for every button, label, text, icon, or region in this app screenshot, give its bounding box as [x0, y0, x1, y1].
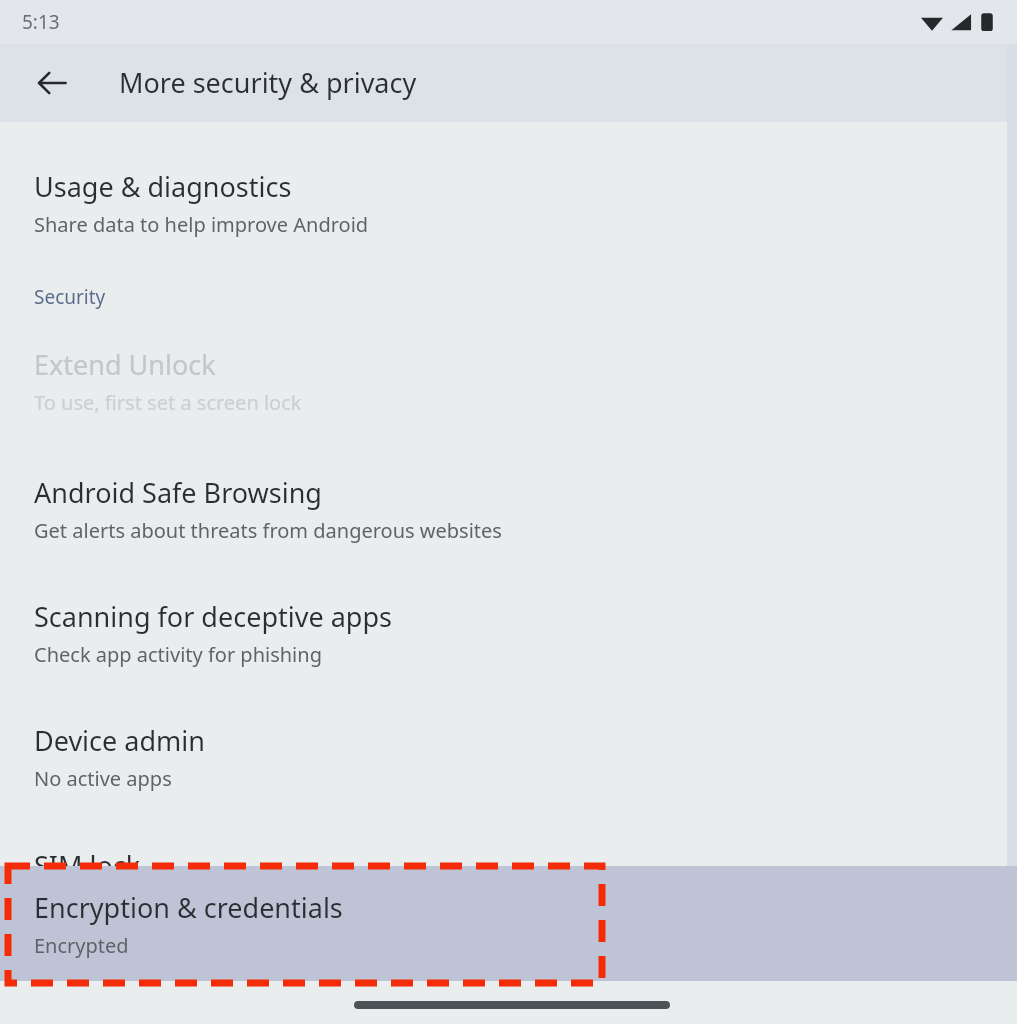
button[interactable]: Android Safe Browsing — [0, 474, 1017, 544]
staticText: Encrypted — [34, 932, 129, 959]
staticText: Extend Unlock — [34, 346, 216, 383]
staticText: Get alerts about threats from dangerous … — [34, 517, 502, 544]
staticText: Check app activity for phishing — [34, 641, 322, 668]
staticText: Scanning for deceptive apps — [34, 598, 392, 635]
staticText: 5:13 — [22, 9, 60, 35]
staticText: To use, first set a screen lock — [34, 389, 302, 416]
button[interactable]: Usage & diagnostics — [0, 168, 1017, 238]
button[interactable]: Scanning for deceptive apps — [0, 598, 1017, 668]
staticText: SIM lock — [34, 847, 141, 884]
button[interactable]: Encryption & credentials — [0, 866, 1017, 981]
staticText: More security & privacy — [119, 64, 417, 101]
staticText: No active apps — [34, 765, 172, 792]
button[interactable]: Device admin — [0, 722, 1017, 792]
staticText: Share data to help improve Android — [34, 211, 369, 238]
button[interactable]: Back — [22, 53, 82, 113]
button[interactable]: Extend Unlock — [0, 346, 1017, 416]
staticText: Usage & diagnostics — [34, 168, 292, 205]
staticText: Security — [34, 284, 106, 310]
staticText: Encryption & credentials — [34, 889, 343, 926]
staticText: Device admin — [34, 722, 205, 759]
staticText: Android Safe Browsing — [34, 474, 322, 511]
button[interactable]: SIM lock — [0, 842, 1017, 888]
